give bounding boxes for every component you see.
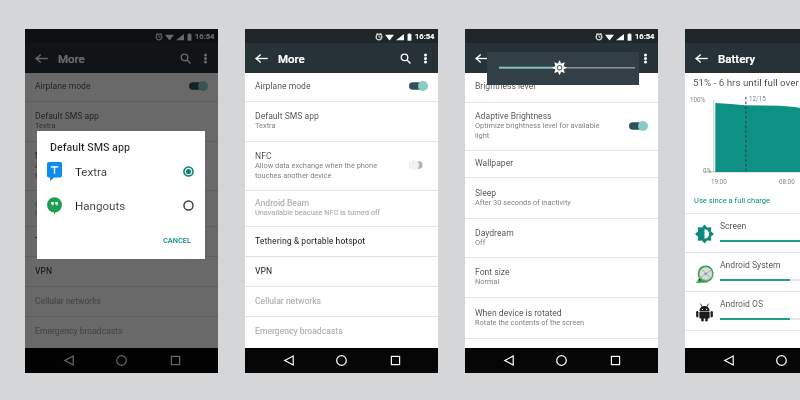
staticText: More — [278, 52, 305, 65]
staticText: Airplane mode — [35, 81, 91, 91]
staticText: Font size — [475, 267, 510, 277]
staticText: 100% — [690, 96, 706, 103]
button[interactable]: Navigate up — [32, 49, 50, 67]
button[interactable]: Emergency broadcasts — [25, 317, 218, 346]
staticText: Android OS — [720, 299, 764, 309]
staticText: Battery — [718, 52, 756, 65]
button[interactable]: Emergency broadcasts — [245, 317, 438, 346]
staticText: Emergency broadcasts — [35, 326, 123, 336]
staticText: 16:54 — [635, 32, 655, 41]
staticText: Default SMS app — [255, 111, 319, 121]
staticText: Unavailable beacuse NFC is turned off — [255, 208, 381, 217]
staticText: Unavailable beacuse NFC is turned off — [35, 208, 161, 217]
button[interactable]: CANCEL — [155, 231, 205, 252]
button[interactable]: Default SMS app — [25, 102, 218, 141]
button[interactable]: Back — [494, 348, 524, 373]
button[interactable]: Home — [546, 348, 576, 373]
button[interactable]: When device is rotated — [465, 298, 658, 338]
staticText: NFC — [255, 151, 272, 161]
button[interactable]: Tethering & portable hotspot — [245, 227, 438, 256]
staticText: Sleep — [475, 188, 497, 198]
button[interactable]: Home — [766, 348, 796, 373]
staticText: VPN — [35, 266, 53, 276]
button[interactable]: Switch on — [629, 121, 648, 131]
button[interactable]: Tethering & portable hotspot — [25, 227, 218, 256]
button[interactable]: Default SMS app — [245, 102, 438, 141]
staticText: After 30 seconds of inactivity — [475, 198, 571, 207]
staticText: Use since a full charge — [694, 196, 771, 205]
staticText: 16:54 — [415, 32, 435, 41]
button[interactable]: Hangouts — [37, 190, 205, 221]
button[interactable]: Home — [106, 348, 136, 373]
button[interactable]: Home — [326, 348, 356, 373]
button[interactable]: Adaptive Brightness — [465, 103, 658, 150]
staticText: VPN — [255, 266, 273, 276]
button[interactable]: Android OS — [685, 292, 800, 330]
button[interactable]: Switch off — [409, 160, 428, 170]
button[interactable]: Switch on — [409, 81, 428, 91]
button[interactable]: Screen — [685, 214, 800, 252]
button[interactable]: Back — [274, 348, 304, 373]
button[interactable]: Recent apps — [160, 348, 190, 373]
staticText: Default SMS app — [50, 141, 130, 154]
button[interactable]: Android Beam — [245, 191, 438, 226]
button[interactable]: NFC — [245, 142, 438, 190]
staticText: CANCEL — [163, 236, 191, 245]
staticText: Screen — [720, 221, 747, 231]
staticText: 19:00 — [711, 178, 727, 185]
button[interactable]: Cellular networks — [25, 287, 218, 316]
button[interactable]: More options — [417, 50, 433, 66]
button[interactable]: Cellular networks — [245, 287, 438, 316]
staticText: Allow data exchange when the phone touch… — [35, 161, 158, 180]
button[interactable]: Search — [396, 49, 414, 67]
staticText: NFC — [35, 151, 52, 161]
staticText: Airplane mode — [255, 81, 311, 91]
staticText: Optimize brightness level for available … — [475, 121, 600, 140]
button[interactable]: Recent apps — [380, 348, 410, 373]
staticText: Emergency broadcasts — [255, 326, 343, 336]
staticText: Android Beam — [255, 198, 310, 208]
button[interactable]: Textra — [37, 156, 205, 187]
staticText: Normal — [475, 277, 500, 286]
button[interactable]: Font size — [465, 258, 658, 297]
staticText: More — [58, 52, 85, 65]
staticText: When device is rotated — [475, 308, 562, 318]
button[interactable]: More options — [197, 50, 213, 66]
staticText: Cellular networks — [35, 296, 102, 306]
staticText: Textra — [35, 121, 56, 130]
button[interactable]: Android System — [685, 253, 800, 291]
button[interactable]: VPN — [25, 257, 218, 286]
button[interactable]: Airplane mode — [25, 73, 218, 101]
button[interactable]: Switch on — [189, 81, 208, 91]
button[interactable]: Search — [176, 49, 194, 67]
button[interactable]: Airplane mode — [245, 73, 438, 101]
button[interactable]: NFC — [25, 142, 218, 190]
button[interactable]: Navigate up — [252, 49, 270, 67]
staticText: 12/15 — [749, 95, 766, 102]
staticText: Allow data exchange when the phone touch… — [255, 161, 378, 180]
staticText: Cellular networks — [255, 296, 322, 306]
staticText: 0% — [703, 167, 712, 174]
button[interactable]: Brightness level — [465, 73, 658, 102]
staticText: Default SMS app — [35, 111, 99, 121]
staticText: Textra — [255, 121, 276, 130]
staticText: Android Beam — [35, 198, 90, 208]
button[interactable]: Android Beam — [25, 191, 218, 226]
button[interactable]: Recent apps — [600, 348, 630, 373]
button[interactable]: Back — [54, 348, 84, 373]
staticText: 16:54 — [195, 32, 215, 41]
staticText: Daydream — [475, 228, 514, 238]
button[interactable]: More options — [637, 50, 653, 66]
button[interactable]: Back — [714, 348, 744, 373]
button[interactable]: Sleep — [465, 178, 658, 218]
staticText: Textra — [75, 165, 108, 179]
button[interactable]: VPN — [245, 257, 438, 286]
button[interactable]: Switch off — [189, 160, 208, 170]
button[interactable]: Use since a full charge — [689, 193, 776, 208]
button[interactable]: Navigate up — [692, 49, 710, 67]
button[interactable]: Daydream — [465, 219, 658, 257]
button[interactable]: Navigate up — [472, 49, 490, 67]
button[interactable]: Wallpaper — [465, 151, 658, 177]
staticText: Android System — [720, 260, 781, 270]
staticText: Off — [475, 238, 486, 247]
